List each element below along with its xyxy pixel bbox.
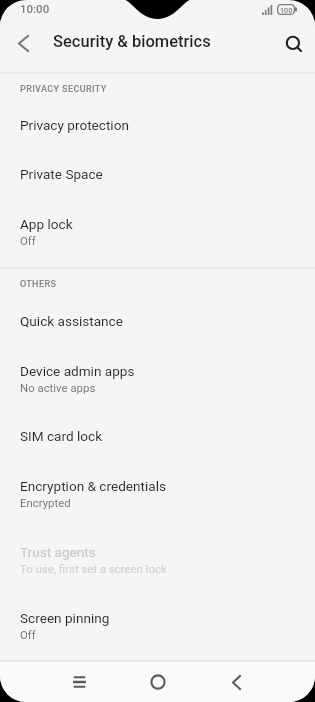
staticText: Encryption & credentials <box>20 478 167 494</box>
button[interactable]: Trust agents <box>0 526 315 592</box>
button[interactable]: Privacy protection <box>0 100 315 149</box>
staticText: Trust agents <box>20 544 96 560</box>
button[interactable]: Screen pinning <box>0 592 315 658</box>
staticText: Privacy protection <box>20 117 129 133</box>
button[interactable]: Back <box>6 26 40 60</box>
staticText: PRIVACY SECURITY <box>20 84 107 95</box>
staticText: Screen pinning <box>20 610 110 626</box>
button[interactable]: Device admin apps <box>0 345 315 411</box>
staticText: Quick assistance <box>20 313 123 329</box>
button[interactable]: App lock <box>0 198 315 264</box>
button[interactable]: Encryption & credentials <box>0 460 315 526</box>
staticText: App lock <box>20 216 73 232</box>
staticText: SIM card lock <box>20 428 103 444</box>
staticText: 100 <box>280 6 293 14</box>
button[interactable]: Back <box>216 662 256 702</box>
button[interactable]: SIM card lock <box>0 411 315 460</box>
staticText: Off <box>20 234 36 247</box>
button[interactable]: Private Space <box>0 149 315 198</box>
staticText: 10:00 <box>20 2 50 15</box>
staticText: Security & biometrics <box>53 32 211 51</box>
staticText: To use, first set a screen lock <box>20 562 167 575</box>
button[interactable]: Home <box>138 662 178 702</box>
button[interactable]: Recent apps <box>59 662 99 702</box>
button[interactable]: Quick assistance <box>0 296 315 345</box>
button[interactable]: Search <box>278 28 310 60</box>
staticText: OTHERS <box>20 279 57 290</box>
staticText: No active apps <box>20 381 96 394</box>
staticText: Off <box>20 628 36 641</box>
staticText: Encrypted <box>20 496 71 509</box>
staticText: Private Space <box>20 166 103 182</box>
staticText: Device admin apps <box>20 363 135 379</box>
